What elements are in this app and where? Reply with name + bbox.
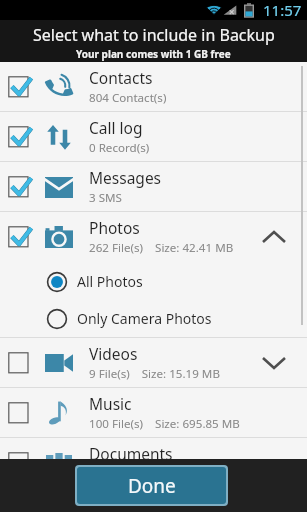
button[interactable]: Videos — [0, 338, 307, 387]
staticText: Done — [128, 473, 176, 499]
staticText: 34 File(s) Size: 12.20 MB — [89, 466, 227, 482]
staticText: Music — [89, 393, 132, 414]
button[interactable]: Only Camera Photos — [0, 300, 307, 337]
staticText: 262 File(s) Size: 42.41 MB — [89, 240, 234, 256]
button[interactable]: Collapse — [251, 212, 297, 261]
staticText: Documents — [89, 443, 173, 464]
button[interactable]: Call log — [0, 112, 307, 161]
staticText: 100 File(s) Size: 695.85 MB — [89, 416, 240, 432]
staticText: Call log — [89, 117, 143, 138]
staticText: 11:57 — [263, 0, 302, 20]
button[interactable]: Expand — [251, 338, 297, 387]
button[interactable]: Messages — [0, 162, 307, 211]
button[interactable]: Contacts — [0, 62, 307, 111]
staticText: Messages — [89, 167, 162, 188]
staticText: Your plan comes with 1 GB free — [76, 47, 231, 61]
button[interactable]: Documents — [0, 438, 307, 487]
staticText: All Photos — [77, 272, 143, 291]
staticText: Videos — [89, 343, 138, 364]
staticText: 804 Contact(s) — [89, 90, 167, 106]
button[interactable]: All Photos — [0, 263, 307, 300]
staticText: 0 Record(s) — [89, 140, 150, 156]
button[interactable]: Photos — [0, 212, 307, 261]
staticText: Contacts — [89, 67, 153, 88]
staticText: Only Camera Photos — [77, 309, 212, 328]
button[interactable]: Done — [77, 467, 226, 504]
staticText: Select what to include in Backup — [33, 24, 275, 46]
staticText: Photos — [89, 217, 140, 238]
staticText: 3 SMS — [89, 190, 122, 206]
button[interactable]: Music — [0, 388, 307, 437]
staticText: 9 File(s) Size: 15.19 MB — [89, 366, 220, 382]
